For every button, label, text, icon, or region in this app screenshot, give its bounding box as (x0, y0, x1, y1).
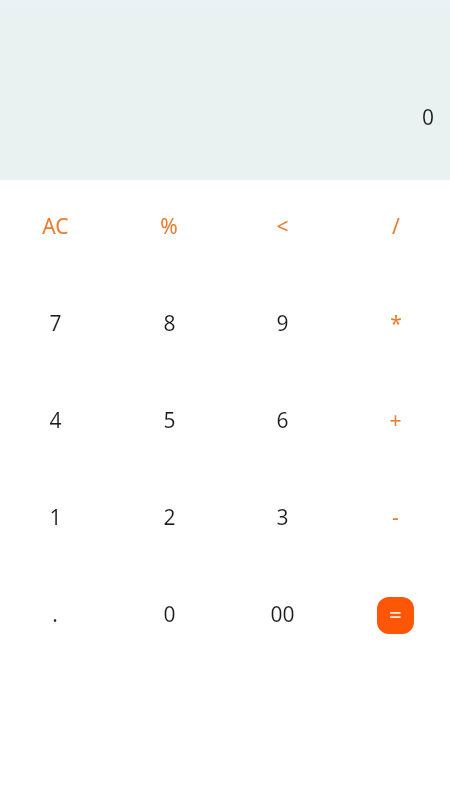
staticText: 0 (163, 600, 176, 629)
button[interactable]: All clear (0, 178, 112, 275)
staticText: 7 (49, 309, 62, 338)
button[interactable]: Backspace (224, 178, 337, 275)
staticText: 1 (49, 503, 62, 532)
button[interactable]: Divide (337, 178, 450, 275)
button[interactable]: 8 (112, 275, 224, 372)
button[interactable]: 9 (224, 275, 337, 372)
staticText: 4 (49, 406, 62, 435)
staticText: 3 (276, 503, 289, 532)
button[interactable]: 00 (224, 566, 337, 663)
staticText: AC (42, 212, 69, 241)
button[interactable]: Decimal point (0, 566, 112, 663)
button[interactable]: Percent (112, 178, 224, 275)
staticText: = (389, 599, 402, 629)
button[interactable]: 5 (112, 372, 224, 469)
staticText: / (392, 212, 400, 241)
button[interactable]: Equals (377, 597, 414, 634)
button[interactable]: 4 (0, 372, 112, 469)
staticText: - (392, 503, 399, 532)
button[interactable]: 6 (224, 372, 337, 469)
staticText: 5 (163, 406, 176, 435)
staticText: 6 (276, 406, 289, 435)
staticText: 2 (163, 503, 176, 532)
staticText: . (52, 600, 58, 629)
staticText: < (276, 212, 289, 241)
staticText: % (160, 212, 178, 241)
button[interactable]: Multiply (337, 275, 450, 372)
staticText: + (389, 406, 402, 435)
button[interactable]: 1 (0, 469, 112, 566)
button[interactable]: 2 (112, 469, 224, 566)
staticText: 00 (270, 600, 295, 629)
staticText: * (390, 309, 402, 338)
button[interactable]: Add (337, 372, 450, 469)
button[interactable]: 3 (224, 469, 337, 566)
button[interactable]: 0 (112, 566, 224, 663)
button[interactable]: Subtract (337, 469, 450, 566)
button[interactable]: 7 (0, 275, 112, 372)
staticText: 9 (276, 309, 289, 338)
staticText: 8 (163, 309, 176, 338)
staticText: 0 (422, 103, 435, 132)
